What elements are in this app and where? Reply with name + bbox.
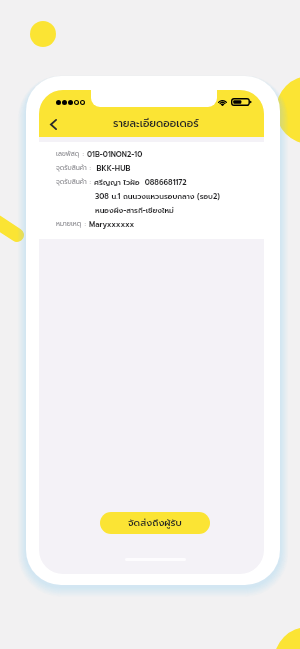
staticText: 308 น.1 ถนนวงแหวนรอบกลาง (รอบ2) — [95, 191, 220, 202]
staticText: 01B-01NON2-10 — [87, 149, 143, 160]
staticText: รายละเอียดออเดอร์ — [113, 116, 199, 132]
staticText: หมายเหตุ — [56, 219, 82, 229]
staticText: เลขพัสดุ — [56, 149, 80, 159]
staticText: BKK-HUB — [94, 163, 131, 174]
staticText: Maryxxxxxx — [89, 219, 135, 230]
button[interactable]: จัดส่งถึงผู้รับ — [100, 512, 210, 534]
staticText: : — [82, 219, 89, 229]
staticText: : — [87, 163, 94, 173]
staticText: : — [87, 177, 94, 187]
button[interactable]: Back — [43, 114, 63, 134]
staticText: หนองผึง-สารกี-เชียงใหม่ — [95, 205, 174, 216]
staticText: ศรีญญา ไวฝ้อ 0886681172 — [94, 177, 187, 188]
staticText: จุดรับสินค้า — [56, 177, 87, 187]
staticText: จุดรับสินค้า — [56, 163, 87, 173]
staticText: : — [80, 149, 87, 159]
staticText: จัดส่งถึงผู้รับ — [128, 516, 182, 530]
